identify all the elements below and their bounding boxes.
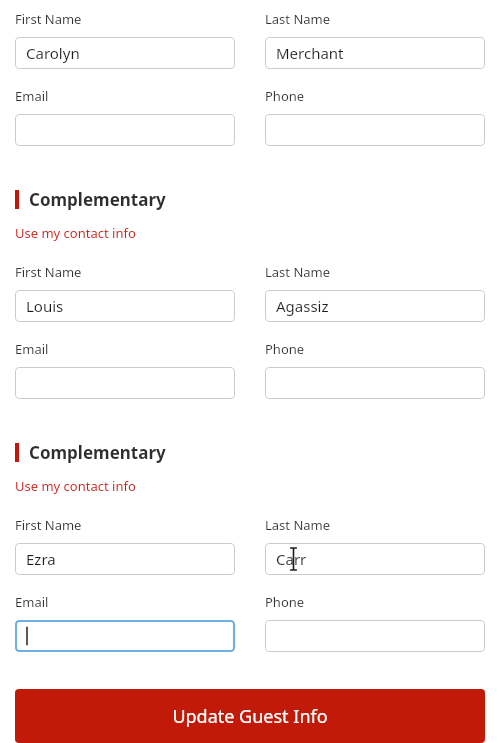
- button[interactable]: [15, 620, 235, 652]
- staticText: Email: [15, 340, 49, 358]
- staticText: Complementary: [29, 188, 166, 211]
- staticText: Merchant: [276, 43, 344, 63]
- button[interactable]: Carr: [265, 543, 485, 575]
- staticText: Phone: [265, 593, 305, 611]
- button[interactable]: Merchant: [265, 37, 485, 69]
- button[interactable]: Carolyn: [15, 37, 235, 69]
- button[interactable]: [265, 620, 485, 652]
- button[interactable]: Use my contact info: [15, 477, 136, 495]
- button[interactable]: [265, 114, 485, 146]
- staticText: Agassiz: [276, 296, 329, 316]
- staticText: Use my contact info: [15, 477, 136, 495]
- button[interactable]: Louis: [15, 290, 235, 322]
- button[interactable]: Update Guest Info: [15, 689, 485, 743]
- button[interactable]: [15, 114, 235, 146]
- staticText: Use my contact info: [15, 224, 136, 242]
- button[interactable]: Ezra: [15, 543, 235, 575]
- staticText: Last Name: [265, 263, 331, 281]
- staticText: Email: [15, 87, 49, 105]
- staticText: Louis: [26, 296, 64, 316]
- staticText: First Name: [15, 10, 82, 28]
- staticText: Ezra: [26, 549, 56, 569]
- staticText: Email: [15, 593, 49, 611]
- button[interactable]: [265, 367, 485, 399]
- staticText: Last Name: [265, 516, 331, 534]
- button[interactable]: Use my contact info: [15, 224, 136, 242]
- staticText: Phone: [265, 87, 305, 105]
- staticText: First Name: [15, 263, 82, 281]
- staticText: Complementary: [29, 441, 166, 464]
- staticText: Last Name: [265, 10, 331, 28]
- staticText: Phone: [265, 340, 305, 358]
- button[interactable]: [15, 367, 235, 399]
- staticText: Update Guest Info: [172, 704, 328, 729]
- button[interactable]: Agassiz: [265, 290, 485, 322]
- staticText: Carolyn: [26, 43, 80, 63]
- staticText: First Name: [15, 516, 82, 534]
- staticText: Carr: [276, 549, 307, 569]
